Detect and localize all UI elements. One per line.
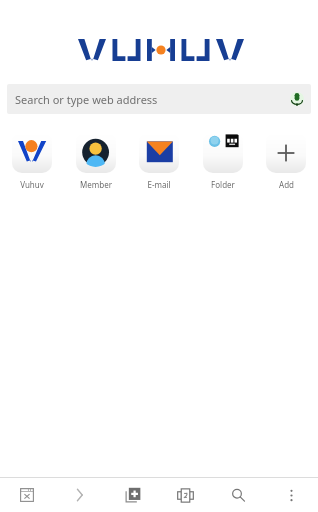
button[interactable]: Folder xyxy=(192,133,254,190)
button[interactable]: E-mail xyxy=(128,133,190,190)
button[interactable]: Vuhuv xyxy=(1,133,63,190)
staticText: Folder xyxy=(211,179,235,190)
button[interactable]: New tab xyxy=(106,478,159,512)
button[interactable]: Member xyxy=(65,133,127,190)
staticText: Search or type web address xyxy=(15,92,158,107)
button[interactable]: Voice search xyxy=(287,89,307,109)
button[interactable]: Add xyxy=(255,133,317,190)
button[interactable]: Tabs xyxy=(159,478,212,512)
button[interactable]: Forward xyxy=(53,478,106,512)
button[interactable]: Search or type web address xyxy=(7,84,311,114)
button[interactable]: Close tab xyxy=(0,478,53,512)
button[interactable]: Search xyxy=(212,478,265,512)
staticText: E-mail xyxy=(147,179,171,190)
staticText: Member xyxy=(80,179,112,190)
button[interactable]: More xyxy=(265,478,318,512)
staticText: Vuhuv xyxy=(20,179,44,190)
staticText: Add xyxy=(279,179,294,190)
